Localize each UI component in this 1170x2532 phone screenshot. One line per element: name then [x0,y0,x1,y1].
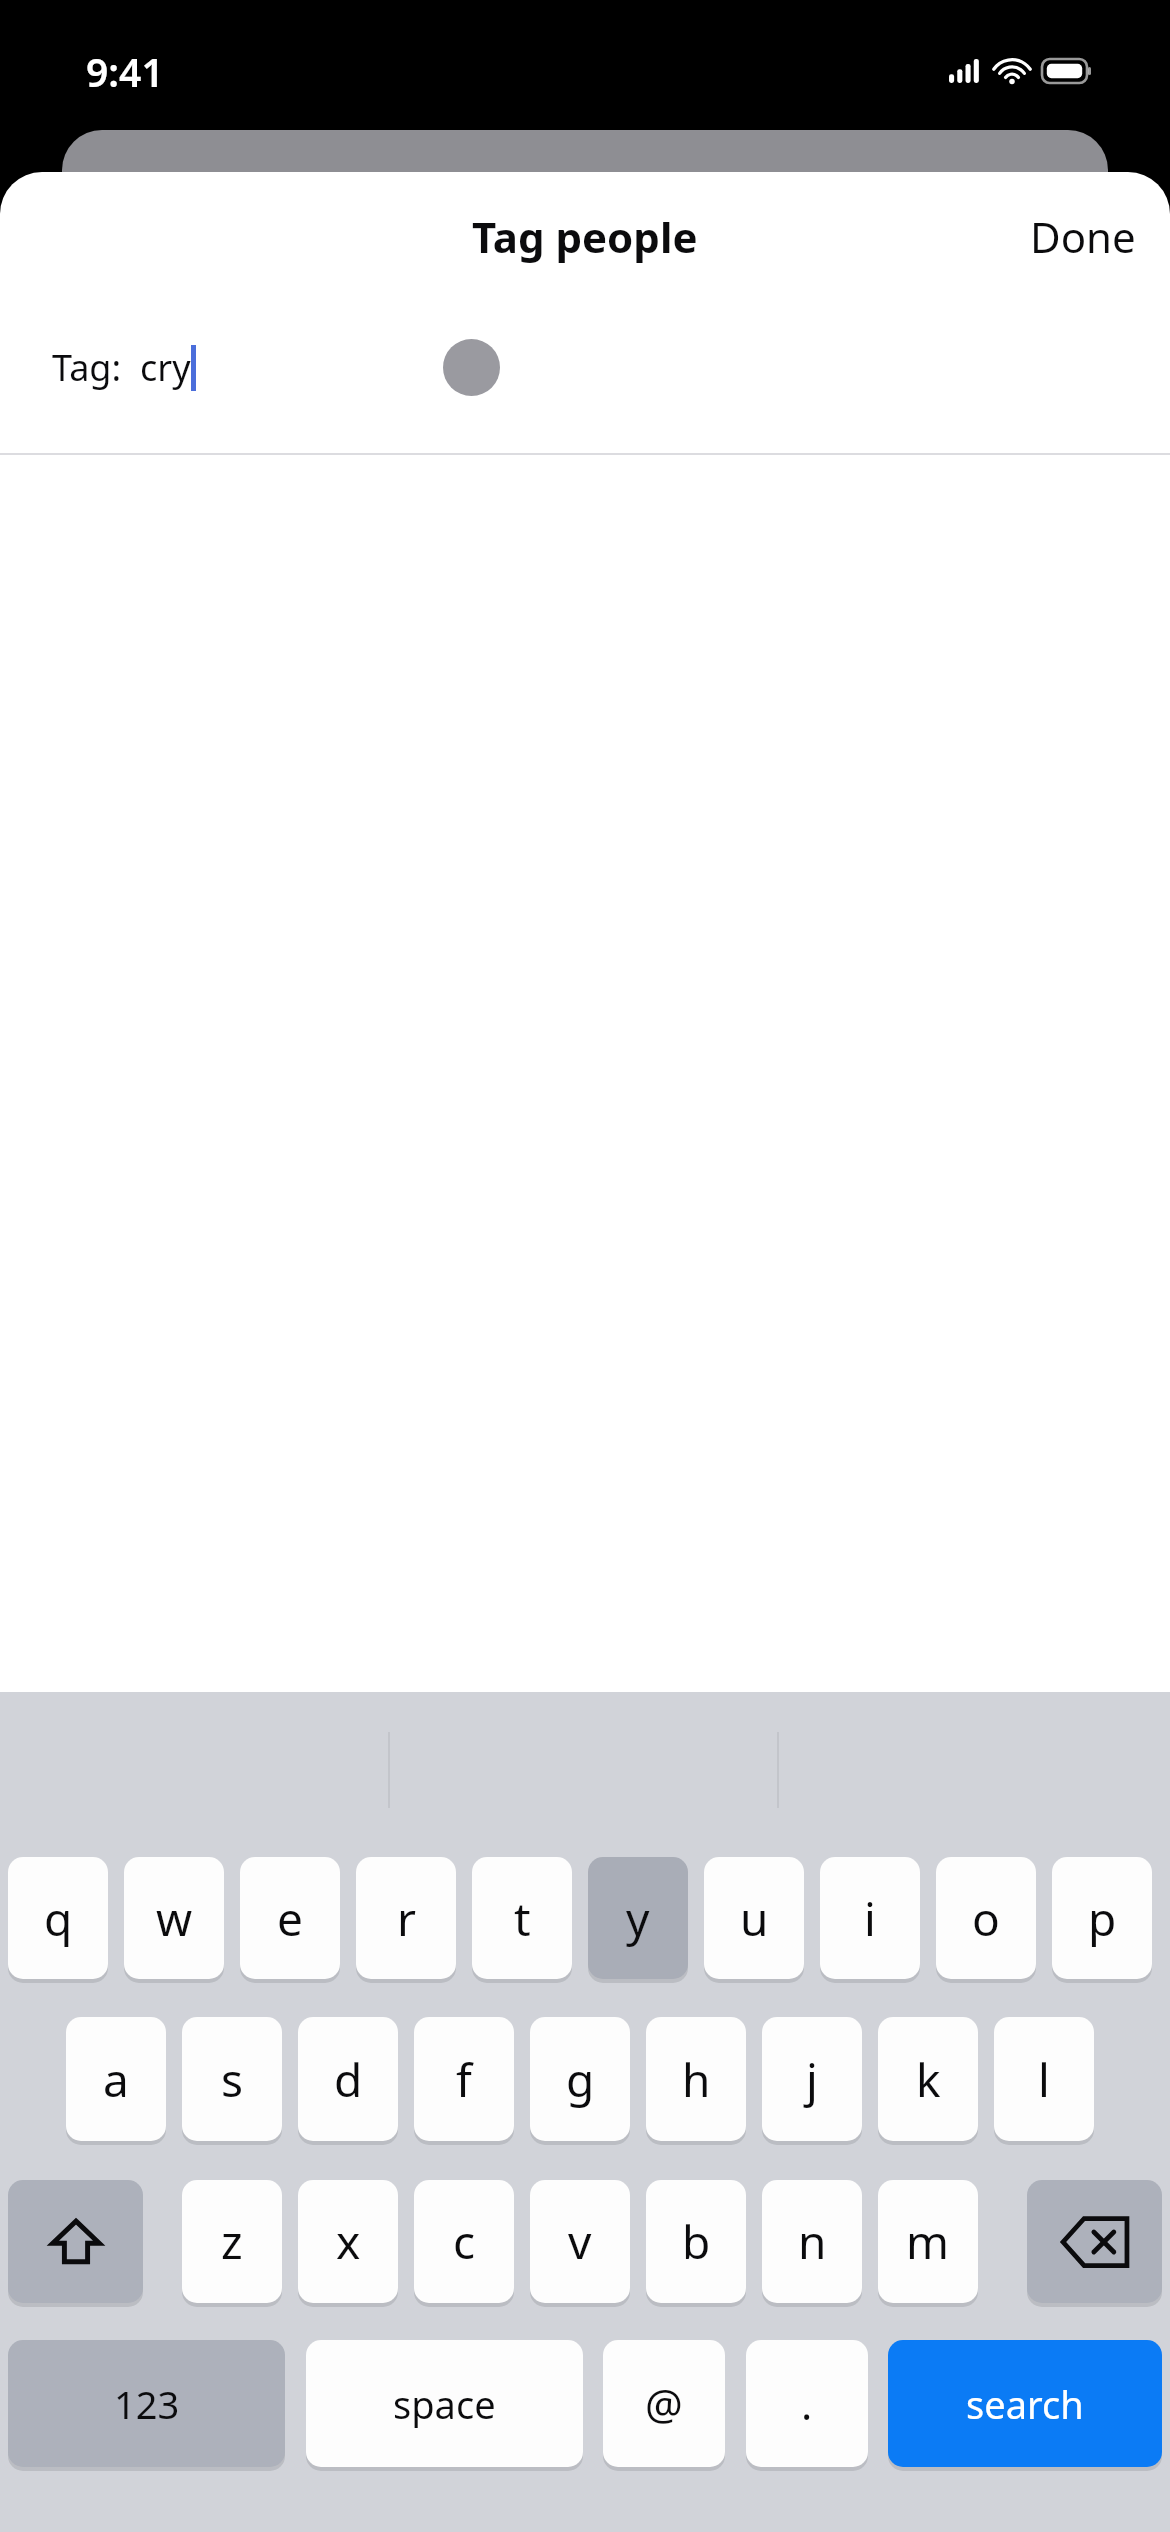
staticText: 123 [114,2378,180,2430]
staticText: x [336,2210,361,2273]
button[interactable]: f [414,2017,514,2141]
staticText: cry [140,343,191,392]
button[interactable]: q [8,1857,108,1979]
staticText: b [682,2210,711,2273]
staticText: h [682,2048,711,2111]
staticText: Done [1030,208,1136,265]
staticText: q [44,1887,73,1950]
button[interactable]: e [240,1857,340,1979]
button[interactable]: k [878,2017,978,2141]
button[interactable]: Backspace [1027,2180,1162,2303]
button[interactable]: i [820,1857,920,1979]
staticText: y [626,1887,650,1950]
staticText: 9:41 [86,45,164,98]
button[interactable]: n [762,2180,862,2303]
staticText: j [806,2048,818,2111]
staticText: r [397,1887,416,1950]
button[interactable]: Profile avatar [443,339,500,396]
staticText: k [916,2048,941,2111]
staticText: . [801,2375,813,2432]
button[interactable]: search [888,2340,1162,2467]
staticText: u [740,1887,769,1950]
button[interactable]: j [762,2017,862,2141]
staticText: c [453,2210,476,2273]
button[interactable]: z [182,2180,282,2303]
button[interactable]: g [530,2017,630,2141]
staticText: t [514,1887,531,1950]
staticText: @ [645,2375,683,2432]
button[interactable]: s [182,2017,282,2141]
staticText: Tag: [52,343,140,392]
button[interactable]: h [646,2017,746,2141]
button[interactable]: m [878,2180,978,2303]
staticText: v [568,2210,592,2273]
staticText: f [456,2048,472,2111]
staticText: space [393,2378,496,2430]
staticText: z [221,2210,243,2273]
staticText: i [864,1887,876,1950]
button[interactable]: l [994,2017,1094,2141]
staticText: e [277,1887,303,1950]
button[interactable]: t [472,1857,572,1979]
button[interactable]: Numbers [8,2340,285,2467]
button[interactable]: space [306,2340,583,2467]
button[interactable]: y [588,1857,688,1979]
button[interactable]: o [936,1857,1036,1979]
staticText: p [1088,1887,1117,1950]
staticText: m [906,2210,950,2273]
button[interactable]: a [66,2017,166,2141]
staticText: n [798,2210,827,2273]
button[interactable]: Period [746,2340,868,2467]
button[interactable]: x [298,2180,398,2303]
button[interactable]: b [646,2180,746,2303]
button[interactable]: p [1052,1857,1152,1979]
button[interactable]: r [356,1857,456,1979]
button[interactable]: Shift [8,2180,143,2303]
staticText: s [221,2048,244,2111]
staticText: l [1038,2048,1050,2111]
button[interactable]: v [530,2180,630,2303]
button[interactable]: u [704,1857,804,1979]
staticText: g [566,2048,595,2111]
staticText: search [966,2378,1084,2430]
button[interactable]: Done [996,198,1170,275]
staticText: o [972,1887,1000,1950]
staticText: d [334,2048,363,2111]
button[interactable]: @ [603,2340,725,2467]
button[interactable]: w [124,1857,224,1979]
button[interactable]: c [414,2180,514,2303]
staticText: w [156,1887,193,1950]
staticText: Tag people [472,208,698,265]
staticText: a [103,2048,129,2111]
button[interactable]: d [298,2017,398,2141]
